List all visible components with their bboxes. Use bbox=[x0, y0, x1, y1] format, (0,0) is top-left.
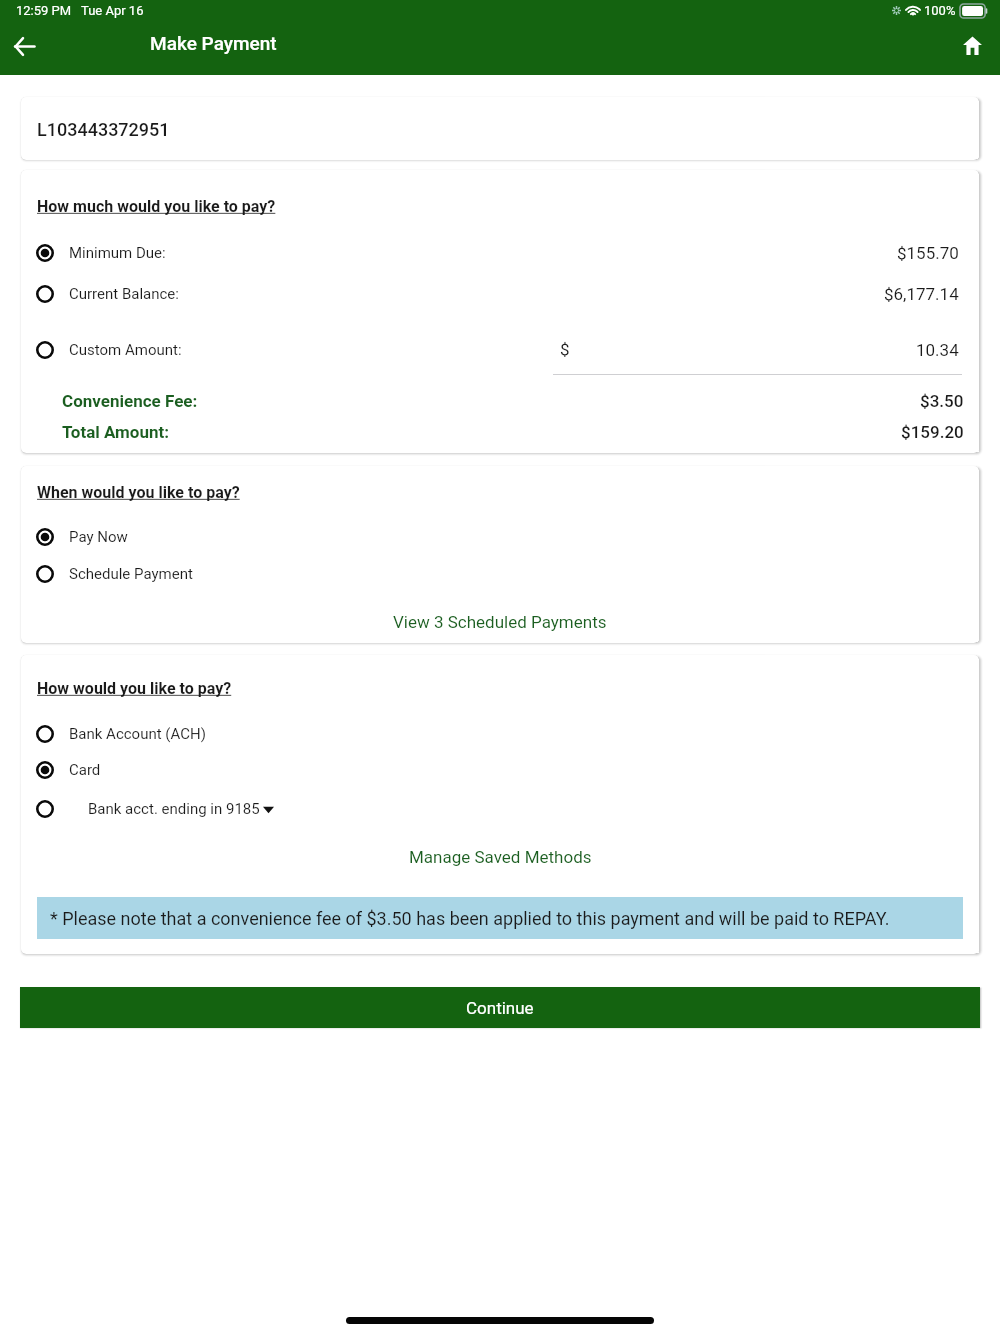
button[interactable]: Bank acct. ending in 9185 bbox=[35, 796, 274, 822]
button[interactable]: Continue bbox=[20, 987, 980, 1028]
button[interactable]: Custom amount bbox=[532, 337, 962, 363]
staticText: Minimum Due: bbox=[69, 244, 166, 262]
staticText: How would you like to pay? bbox=[37, 679, 232, 698]
staticText: $ bbox=[560, 339, 570, 359]
staticText: L103443372951 bbox=[37, 119, 170, 140]
staticText: Custom Amount: bbox=[69, 341, 182, 359]
staticText: Total Amount: bbox=[62, 422, 169, 442]
staticText: Manage Saved Methods bbox=[409, 847, 592, 867]
staticText: Continue bbox=[466, 998, 534, 1018]
button[interactable]: Manage Saved Methods bbox=[21, 844, 979, 870]
button[interactable]: View 3 Scheduled Payments bbox=[21, 609, 979, 635]
staticText: * Please note that a convenience fee of … bbox=[50, 908, 890, 929]
staticText: Bank Account (ACH) bbox=[69, 725, 206, 743]
button[interactable]: Minimum Due: bbox=[21, 240, 979, 266]
staticText: Tue Apr 16 bbox=[81, 3, 144, 18]
staticText: 12:59 PM bbox=[16, 3, 72, 18]
button[interactable]: Card bbox=[35, 757, 101, 783]
button[interactable]: Schedule Payment bbox=[35, 561, 193, 587]
button[interactable]: L103443372951 bbox=[21, 97, 979, 160]
staticText: $155.70 bbox=[897, 243, 959, 263]
button[interactable]: Home bbox=[950, 23, 994, 67]
staticText: $6,177.14 bbox=[884, 284, 959, 304]
staticText: Card bbox=[69, 761, 101, 779]
staticText: How much would you like to pay? bbox=[37, 197, 276, 216]
button[interactable]: Back bbox=[2, 24, 46, 68]
staticText: $159.20 bbox=[901, 422, 964, 442]
button[interactable]: Pay Now bbox=[35, 524, 128, 550]
staticText: View 3 Scheduled Payments bbox=[393, 612, 607, 632]
staticText: Bank acct. ending in 9185 bbox=[88, 800, 260, 818]
staticText: Make Payment bbox=[150, 32, 277, 54]
staticText: Current Balance: bbox=[69, 285, 179, 303]
button[interactable]: Custom Amount: bbox=[35, 340, 182, 360]
button[interactable]: Current Balance: bbox=[21, 281, 979, 307]
staticText: $3.50 bbox=[920, 391, 964, 411]
button[interactable]: Bank Account (ACH) bbox=[35, 721, 206, 747]
staticText: When would you like to pay? bbox=[37, 483, 240, 502]
staticText: Schedule Payment bbox=[69, 565, 193, 583]
staticText: Pay Now bbox=[69, 528, 128, 546]
staticText: Convenience Fee: bbox=[62, 391, 198, 411]
staticText: 10.34 bbox=[916, 340, 959, 360]
staticText: 100% bbox=[924, 3, 956, 18]
